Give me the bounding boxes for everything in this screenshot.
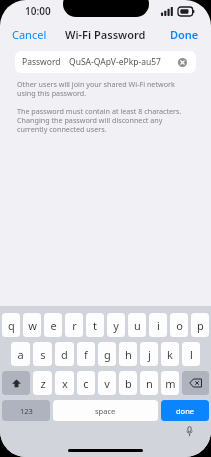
staticText: i xyxy=(157,318,160,333)
staticText: b xyxy=(125,376,132,391)
button[interactable]: Clear text xyxy=(175,55,189,69)
button[interactable]: v xyxy=(98,371,116,395)
staticText: a xyxy=(17,347,24,362)
staticText: done xyxy=(176,406,195,416)
button[interactable]: k xyxy=(161,342,179,366)
button[interactable]: Shift xyxy=(2,371,30,395)
button[interactable]: Dictate xyxy=(181,423,197,439)
button[interactable]: a xyxy=(11,342,30,366)
button[interactable]: h xyxy=(119,342,137,366)
staticText: Done xyxy=(170,27,199,42)
staticText: Cancel xyxy=(12,27,47,42)
button[interactable]: 123 xyxy=(2,400,50,421)
staticText: x xyxy=(62,376,68,391)
button[interactable]: f xyxy=(77,342,95,366)
staticText: o xyxy=(176,318,183,333)
staticText: z xyxy=(40,376,46,391)
staticText: g xyxy=(104,347,111,362)
button[interactable]: b xyxy=(119,371,137,395)
staticText: h xyxy=(125,347,132,362)
staticText: y xyxy=(113,318,119,333)
staticText: d xyxy=(61,347,68,362)
button[interactable]: w xyxy=(23,313,41,337)
staticText: u xyxy=(134,318,141,333)
staticText: s xyxy=(40,347,46,362)
staticText: n xyxy=(146,376,153,391)
button[interactable]: space xyxy=(53,400,158,421)
staticText: f xyxy=(84,347,88,362)
staticText: e xyxy=(50,318,57,333)
staticText: k xyxy=(167,347,173,362)
staticText: m xyxy=(165,376,176,391)
staticText: c xyxy=(83,376,89,391)
staticText: Other users will join your shared Wi-Fi … xyxy=(17,79,194,99)
button[interactable]: z xyxy=(33,371,52,395)
staticText: p xyxy=(197,318,204,333)
button[interactable]: y xyxy=(107,313,125,337)
button[interactable]: Done xyxy=(158,24,211,45)
staticText: l xyxy=(190,347,193,362)
staticText: Password xyxy=(22,56,61,68)
staticText: w xyxy=(28,318,37,333)
button[interactable]: e xyxy=(44,313,62,337)
staticText: v xyxy=(104,376,110,391)
button[interactable]: q xyxy=(2,313,20,337)
button[interactable]: n xyxy=(140,371,158,395)
staticText: j xyxy=(148,347,151,362)
button[interactable]: Cancel xyxy=(0,24,59,45)
button[interactable]: i xyxy=(149,313,167,337)
button[interactable]: m xyxy=(161,371,179,395)
button[interactable]: x xyxy=(55,371,74,395)
button[interactable]: j xyxy=(140,342,158,366)
button[interactable]: p xyxy=(191,313,209,337)
staticText: 10:00 xyxy=(25,4,51,18)
button[interactable]: c xyxy=(77,371,95,395)
staticText: QuSA-QApV-ePkp-au57 xyxy=(69,56,161,68)
staticText: r xyxy=(72,318,77,333)
button[interactable]: o xyxy=(170,313,188,337)
staticText: Wi-Fi Password xyxy=(65,27,146,42)
button[interactable]: Backspace xyxy=(182,371,209,395)
staticText: q xyxy=(8,318,15,333)
button[interactable]: r xyxy=(65,313,83,337)
staticText: The password must contain at least 8 cha… xyxy=(17,106,194,135)
button[interactable]: done xyxy=(161,400,209,421)
button[interactable]: g xyxy=(98,342,116,366)
button[interactable]: l xyxy=(182,342,200,366)
button[interactable]: d xyxy=(55,342,74,366)
button[interactable]: u xyxy=(128,313,146,337)
button[interactable]: t xyxy=(86,313,104,337)
staticText: space xyxy=(95,406,116,416)
staticText: 123 xyxy=(20,406,33,416)
button[interactable]: Password xyxy=(15,51,196,73)
staticText: t xyxy=(93,318,97,333)
button[interactable]: s xyxy=(33,342,52,366)
